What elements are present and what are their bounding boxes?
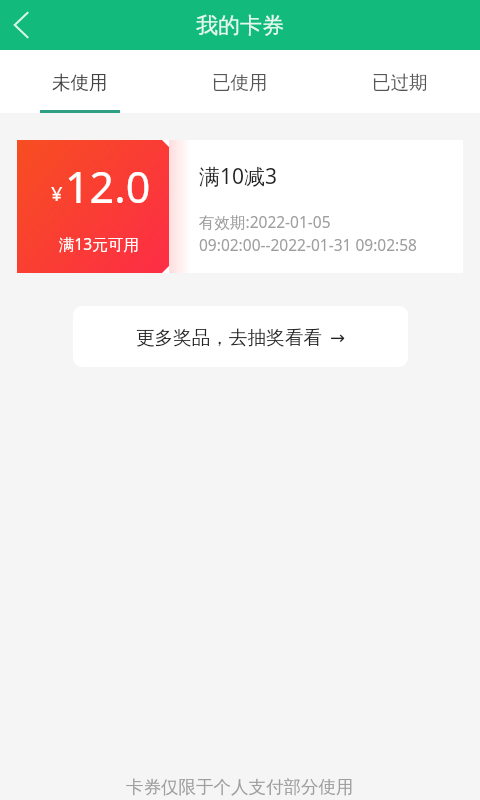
staticText: ¥	[51, 180, 63, 207]
button[interactable]: 已使用	[160, 50, 320, 113]
staticText: 12.0	[65, 157, 151, 216]
staticText: 卡券仅限于个人支付部分使用	[126, 776, 354, 798]
staticText: 满13元可用	[59, 233, 139, 254]
button[interactable]: 已过期	[320, 50, 480, 113]
staticText: 我的卡券	[196, 12, 284, 40]
button[interactable]: 更多奖品，去抽奖看看	[73, 306, 408, 367]
staticText: 满10减3	[199, 162, 278, 191]
staticText: 已使用	[212, 71, 268, 94]
button[interactable]: ¥	[17, 140, 463, 273]
staticText: 09:02:00--2022-01-31 09:02:58	[199, 234, 417, 255]
staticText: 有效期:2022-01-05	[199, 211, 331, 232]
staticText: 已过期	[372, 71, 428, 94]
button[interactable]: 未使用	[0, 50, 160, 113]
staticText: →	[330, 327, 346, 348]
staticText: 更多奖品，去抽奖看看	[136, 326, 322, 349]
staticText: 未使用	[52, 71, 108, 94]
button[interactable]: Back	[0, 1, 48, 49]
